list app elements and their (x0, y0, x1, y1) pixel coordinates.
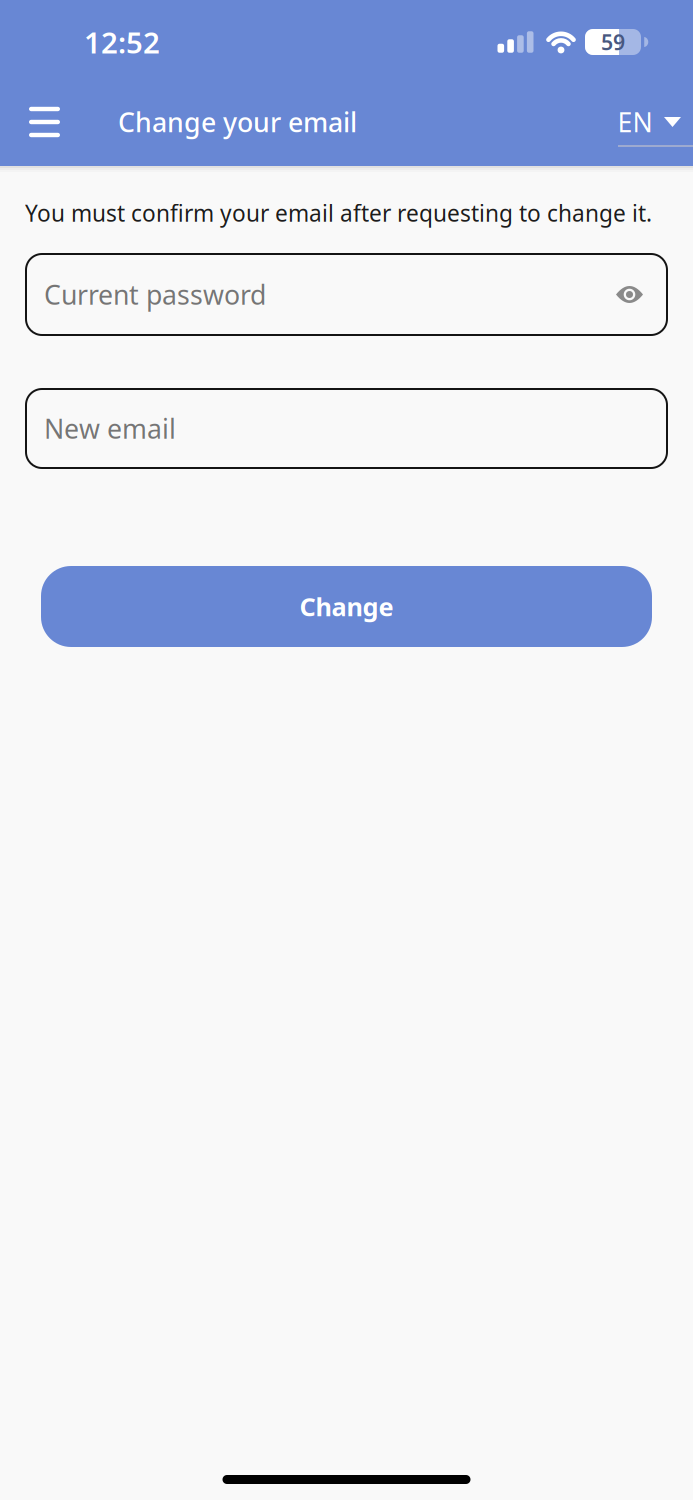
button[interactable]: Change (41, 566, 652, 647)
staticText: 59 (601, 28, 625, 56)
button[interactable]: Menu (19, 97, 69, 147)
staticText: You must confirm your email after reques… (25, 198, 652, 228)
button[interactable]: New email (25, 388, 668, 469)
staticText: New email (44, 411, 176, 446)
staticText: Current password (44, 277, 266, 312)
staticText: Change (299, 590, 393, 623)
staticText: Change your email (118, 104, 357, 140)
button[interactable]: Current password (25, 253, 668, 336)
staticText: EN (617, 104, 652, 140)
button[interactable]: Language (615, 98, 693, 148)
staticText: 12:52 (84, 22, 160, 61)
